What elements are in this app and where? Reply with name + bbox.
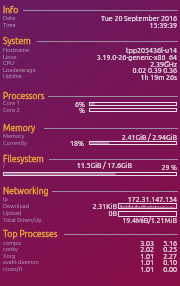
staticText: Top Processes [3, 229, 58, 239]
staticText: conky [3, 246, 18, 252]
staticText: Total Down/Up [3, 217, 42, 223]
staticText: System [3, 36, 31, 46]
staticText: 0.25 [163, 245, 177, 253]
staticText: 11.5GiB / 17.6GiB [76, 161, 132, 169]
staticText: Linux [3, 54, 17, 60]
staticText: rcuos/0 [3, 266, 23, 272]
staticText: 2.31KiB [92, 202, 117, 210]
staticText: Download [3, 203, 30, 209]
staticText: 6% [75, 100, 85, 108]
staticText: 3.03 [140, 239, 154, 247]
staticText: Time [3, 22, 16, 28]
staticText: 0.02 0.39 0.36 [132, 66, 177, 74]
staticText: 1h 19m 26s [140, 73, 177, 81]
staticText: Loadaverage [3, 67, 36, 73]
staticText: Xorg [3, 253, 16, 259]
staticText: avahi-daemon [3, 259, 39, 265]
button[interactable]: Info [0, 0, 180, 286]
staticText: Core 1 [3, 100, 20, 106]
staticText: 19.4MiB/1.21MiB [122, 216, 177, 224]
staticText: Hostname [3, 47, 30, 53]
staticText: 1.01 [140, 265, 154, 273]
staticText: Upload [3, 210, 22, 216]
staticText: compiz [3, 240, 22, 246]
staticText: 2.02 [140, 245, 154, 253]
staticText: 1.01 [140, 252, 154, 260]
staticText: 2.41GiB / 2.94GiB [121, 133, 177, 141]
staticText: Currently [3, 140, 27, 146]
staticText: 29 % [161, 163, 177, 171]
staticText: Memory [3, 123, 36, 133]
staticText: / [3, 162, 6, 168]
staticText: 0B [108, 209, 117, 217]
staticText: Processors [3, 91, 45, 101]
staticText: Memory [3, 133, 25, 139]
staticText: CPU [3, 60, 14, 66]
staticText: tpp205436l-u14 [125, 46, 177, 54]
staticText: 2.27 [163, 252, 177, 260]
staticText: Uptime [3, 73, 22, 79]
staticText: 2.39GHz [150, 60, 177, 68]
staticText: Core 2 [3, 107, 20, 113]
staticText: 0.10 [163, 258, 177, 266]
staticText: 15:39:39 [149, 21, 177, 29]
staticText: Networking [3, 186, 49, 196]
staticText: 5.16 [163, 239, 177, 247]
staticText: 3.19.0-26-generic-x86_64 [96, 53, 177, 61]
staticText: 1.01 [140, 258, 154, 266]
staticText: Info [3, 5, 19, 15]
staticText: % [79, 106, 85, 114]
staticText: Ip [3, 196, 8, 202]
staticText: Date [3, 15, 16, 21]
staticText: 18% [70, 139, 84, 147]
staticText: 172.31.147.154 [127, 195, 177, 203]
staticText: 0.00 [163, 265, 177, 273]
staticText: Tue 20 September 2016 [101, 14, 177, 22]
staticText: Filesystem [3, 154, 44, 164]
